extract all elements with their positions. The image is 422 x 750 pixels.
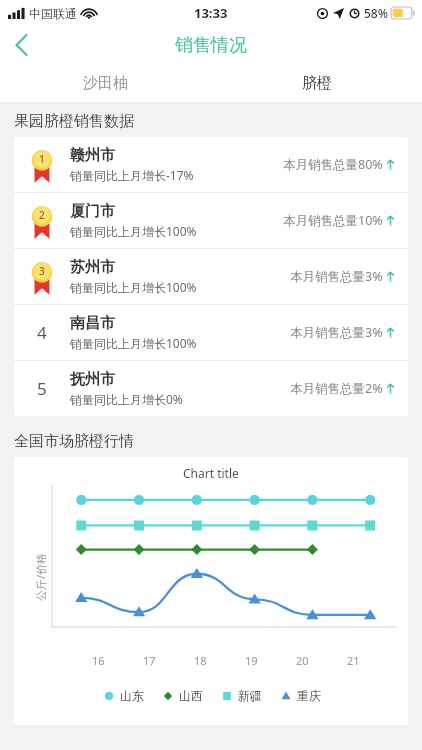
staticText: 销售情况 — [175, 34, 247, 57]
staticText: 山西 — [179, 688, 203, 703]
staticText: 赣州市 — [70, 146, 115, 165]
staticText: 果园脐橙销售数据 — [14, 112, 134, 131]
button[interactable]: 4 — [14, 305, 408, 360]
staticText: 17 — [143, 653, 156, 668]
staticText: 脐橙 — [302, 74, 332, 93]
staticText: 南昌市 — [70, 314, 115, 333]
staticText: 新疆 — [238, 688, 262, 703]
staticText: 销量同比上月增长0% — [70, 391, 183, 407]
button[interactable]: 脐橙 — [211, 64, 422, 102]
button[interactable]: 山东 — [101, 688, 144, 703]
staticText: 公斤/价格 — [33, 552, 48, 601]
staticText: 1 — [39, 152, 45, 166]
button[interactable]: 2 — [14, 193, 408, 248]
staticText: 重庆 — [297, 688, 321, 703]
staticText: 沙田柚 — [83, 74, 128, 93]
staticText: 19 — [245, 653, 258, 668]
staticText: 20 — [296, 653, 309, 668]
button[interactable]: 重庆 — [278, 688, 321, 703]
staticText: 13:33 — [194, 4, 228, 22]
staticText: 中国联通 — [29, 6, 77, 21]
staticText: 2 — [39, 208, 45, 222]
staticText: 本月销售总量10% — [283, 212, 383, 229]
button[interactable]: 1 — [14, 137, 408, 192]
button[interactable]: 新疆 — [219, 688, 262, 703]
staticText: 本月销售总量2% — [290, 380, 383, 397]
staticText: 山东 — [120, 688, 144, 703]
staticText: 18 — [194, 653, 207, 668]
button[interactable]: 沙田柚 — [0, 64, 211, 102]
staticText: 销量同比上月增长100% — [70, 223, 197, 239]
staticText: Chart title — [183, 465, 239, 481]
staticText: 21 — [347, 653, 360, 668]
staticText: 销量同比上月增长100% — [70, 335, 197, 351]
staticText: 5 — [37, 377, 47, 400]
staticText: 本月销售总量3% — [290, 324, 383, 341]
staticText: 苏州市 — [70, 258, 115, 277]
staticText: 销量同比上月增长-17% — [70, 167, 194, 183]
staticText: 销量同比上月增长100% — [70, 279, 197, 295]
staticText: 厦门市 — [70, 202, 115, 221]
staticText: 本月销售总量3% — [290, 268, 383, 285]
staticText: 58% — [364, 5, 388, 21]
staticText: 全国市场脐橙行情 — [14, 432, 134, 451]
button[interactable]: 3 — [14, 249, 408, 304]
staticText: 本月销售总量80% — [283, 156, 383, 173]
staticText: 16 — [92, 653, 105, 668]
staticText: 4 — [37, 321, 47, 344]
button[interactable]: Back — [0, 26, 44, 64]
staticText: 抚州市 — [70, 370, 115, 389]
button[interactable]: 山西 — [160, 688, 203, 703]
staticText: 3 — [39, 264, 45, 278]
button[interactable]: 5 — [14, 361, 408, 416]
